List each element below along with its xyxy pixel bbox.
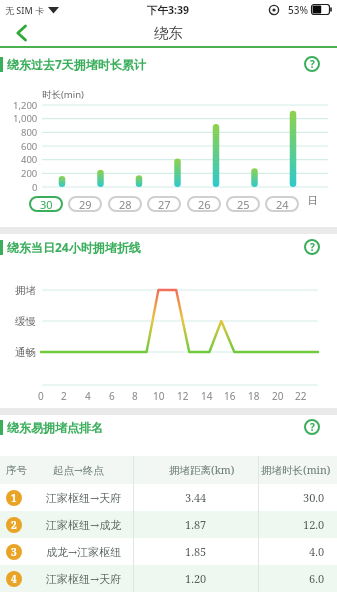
staticText: 30 bbox=[40, 197, 53, 212]
staticText: 0 bbox=[38, 389, 44, 403]
staticText: 6.0 bbox=[309, 571, 325, 586]
button[interactable]: 25 bbox=[226, 196, 260, 212]
staticText: 3 bbox=[11, 545, 17, 559]
staticText: 下午3:39 bbox=[147, 3, 189, 17]
staticText: 4 bbox=[11, 572, 17, 586]
staticText: 时长(min) bbox=[42, 88, 84, 101]
staticText: 4 bbox=[85, 389, 91, 403]
staticText: 江家枢纽→成龙 bbox=[46, 518, 122, 532]
button[interactable]: 27 bbox=[147, 196, 181, 212]
staticText: 序号 bbox=[6, 464, 27, 477]
button[interactable]: 26 bbox=[187, 196, 221, 212]
button[interactable]: 4 bbox=[0, 565, 337, 592]
staticText: 通畅 bbox=[15, 346, 36, 359]
staticText: ? bbox=[310, 420, 315, 434]
staticText: 6 bbox=[109, 389, 115, 403]
staticText: ? bbox=[310, 57, 315, 71]
button[interactable]: 3 bbox=[0, 538, 337, 565]
staticText: 10 bbox=[153, 389, 165, 403]
staticText: 3.44 bbox=[185, 490, 207, 505]
staticText: 日 bbox=[308, 194, 318, 207]
staticText: 30.0 bbox=[303, 490, 325, 505]
staticText: 26 bbox=[198, 197, 211, 212]
staticText: 0 bbox=[32, 181, 38, 194]
staticText: 江家枢纽→天府 bbox=[46, 491, 122, 505]
staticText: 600 bbox=[21, 140, 38, 153]
staticText: 1,200 bbox=[13, 99, 38, 112]
staticText: 绕东过去7天拥堵时长累计 bbox=[7, 56, 146, 72]
button[interactable]: 30 bbox=[29, 196, 63, 212]
staticText: 25 bbox=[237, 197, 250, 212]
staticText: ? bbox=[310, 240, 315, 254]
staticText: 400 bbox=[21, 153, 38, 166]
staticText: 成龙→江家枢纽 bbox=[46, 545, 122, 559]
staticText: 22 bbox=[295, 389, 307, 403]
staticText: 24 bbox=[276, 197, 289, 212]
staticText: 无 SIM 卡 bbox=[5, 4, 45, 16]
button[interactable]: ? bbox=[304, 56, 320, 72]
staticText: 16 bbox=[224, 389, 236, 403]
staticText: 绕东易拥堵点排名 bbox=[7, 420, 103, 435]
staticText: 拥堵时长(min) bbox=[261, 463, 331, 477]
button[interactable]: 1 bbox=[0, 484, 337, 511]
staticText: 53% bbox=[288, 3, 308, 17]
button[interactable]: ? bbox=[304, 239, 320, 255]
staticText: 200 bbox=[21, 167, 38, 180]
staticText: 20 bbox=[272, 389, 284, 403]
staticText: 12.0 bbox=[303, 517, 325, 532]
staticText: 1.87 bbox=[185, 517, 207, 532]
staticText: 1,000 bbox=[13, 112, 38, 125]
staticText: 8 bbox=[132, 389, 138, 403]
button[interactable]: 2 bbox=[0, 511, 337, 538]
staticText: 江家枢纽→天府 bbox=[46, 572, 122, 586]
staticText: 拥堵距离(km) bbox=[169, 463, 235, 477]
button[interactable]: 29 bbox=[68, 196, 102, 212]
staticText: 27 bbox=[158, 197, 171, 212]
button[interactable]: ? bbox=[304, 419, 320, 435]
staticText: 缓慢 bbox=[15, 315, 36, 328]
staticText: 起点→终点 bbox=[53, 464, 104, 477]
staticText: 800 bbox=[21, 126, 38, 139]
staticText: 1 bbox=[11, 491, 17, 505]
staticText: 14 bbox=[201, 389, 213, 403]
staticText: 4.0 bbox=[309, 544, 325, 559]
staticText: 绕东 bbox=[154, 24, 183, 42]
staticText: 1.85 bbox=[185, 544, 207, 559]
staticText: 拥堵 bbox=[15, 284, 36, 297]
staticText: 12 bbox=[177, 389, 189, 403]
staticText: 29 bbox=[79, 197, 92, 212]
staticText: 1.20 bbox=[185, 571, 207, 586]
staticText: 2 bbox=[11, 518, 17, 532]
staticText: 2 bbox=[61, 389, 67, 403]
staticText: 绕东当日24小时拥堵折线 bbox=[7, 239, 141, 255]
button[interactable]: 28 bbox=[108, 196, 142, 212]
button[interactable] bbox=[6, 20, 36, 46]
staticText: 18 bbox=[248, 389, 260, 403]
staticText: 28 bbox=[119, 197, 132, 212]
button[interactable]: 24 bbox=[265, 196, 299, 212]
